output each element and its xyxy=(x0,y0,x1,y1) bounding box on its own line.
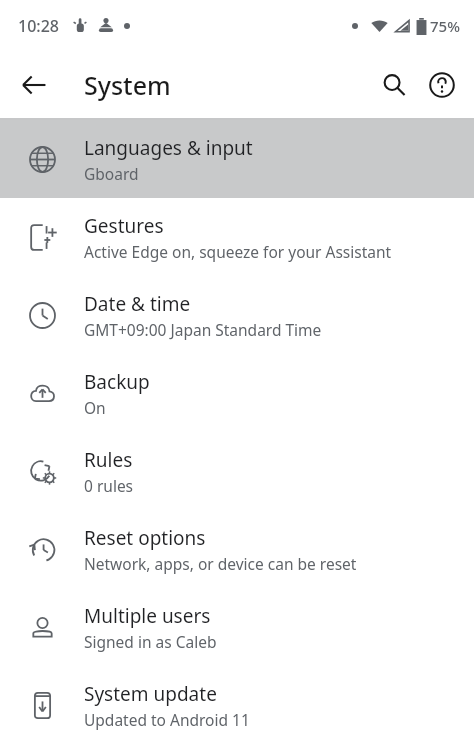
staticText: System update xyxy=(84,681,217,707)
button[interactable]: Help xyxy=(418,61,466,109)
button[interactable]: Search xyxy=(370,61,418,109)
staticText: 75% xyxy=(430,16,460,36)
staticText: On xyxy=(84,397,106,418)
staticText: 10:28 xyxy=(18,15,59,37)
staticText: Gboard xyxy=(84,163,139,184)
button[interactable]: Date & time xyxy=(0,276,474,354)
staticText: 0 rules xyxy=(84,475,134,496)
staticText: Rules xyxy=(84,447,133,473)
staticText: Multiple users xyxy=(84,603,211,629)
staticText: Languages & input xyxy=(84,135,253,161)
button[interactable]: Multiple users xyxy=(0,588,474,666)
staticText: Backup xyxy=(84,369,150,395)
staticText: Signed in as Caleb xyxy=(84,631,217,652)
staticText: Active Edge on, squeeze for your Assista… xyxy=(84,241,392,262)
staticText: Date & time xyxy=(84,291,191,317)
button[interactable]: System update xyxy=(0,666,474,744)
staticText: Network, apps, or device can be reset xyxy=(84,553,357,574)
button[interactable]: Gestures xyxy=(0,198,474,276)
staticText: Gestures xyxy=(84,213,164,239)
button[interactable]: Rules xyxy=(0,432,474,510)
button[interactable]: Backup xyxy=(0,354,474,432)
staticText: System xyxy=(84,68,171,102)
staticText: GMT+09:00 Japan Standard Time xyxy=(84,319,322,340)
staticText: Updated to Android 11 xyxy=(84,709,250,730)
staticText: Reset options xyxy=(84,525,206,551)
button[interactable]: Reset options xyxy=(0,510,474,588)
button[interactable]: Languages & input xyxy=(0,120,474,198)
button[interactable]: Back xyxy=(10,61,58,109)
